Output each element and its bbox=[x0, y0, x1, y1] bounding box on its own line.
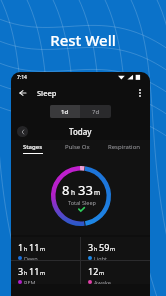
staticText: 3 bbox=[18, 265, 24, 277]
staticText: 7d bbox=[92, 108, 100, 116]
staticText: 7:14 bbox=[17, 74, 27, 81]
button[interactable]: 1 bbox=[11, 237, 80, 260]
button[interactable]: Respiration bbox=[99, 140, 150, 157]
staticText: m bbox=[40, 269, 46, 276]
staticText: m bbox=[40, 245, 46, 252]
staticText: h bbox=[24, 245, 28, 252]
staticText: 12 bbox=[88, 265, 99, 277]
staticText: m bbox=[99, 269, 105, 276]
staticText: REM bbox=[24, 279, 36, 284]
button[interactable]: 12 bbox=[81, 261, 150, 284]
staticText: Today bbox=[69, 126, 92, 137]
staticText: 59 bbox=[99, 241, 110, 253]
button[interactable]: More options bbox=[133, 86, 147, 100]
staticText: Respiration bbox=[108, 143, 141, 151]
staticText: 1 bbox=[18, 241, 24, 253]
button[interactable]: 1d bbox=[50, 105, 80, 118]
button[interactable]: 3 bbox=[81, 237, 150, 260]
staticText: Awake bbox=[94, 279, 111, 284]
staticText: Light bbox=[94, 255, 108, 260]
staticText: 11 bbox=[29, 265, 40, 277]
staticText: Stages bbox=[23, 143, 43, 151]
staticText: Rest Well bbox=[0, 30, 166, 50]
staticText: Deep bbox=[24, 255, 38, 260]
staticText: 3 bbox=[88, 241, 94, 253]
button[interactable]: Stages bbox=[11, 140, 55, 157]
staticText: 1d bbox=[61, 108, 69, 116]
staticText: Pulse Ox bbox=[65, 143, 90, 151]
staticText: 33 bbox=[78, 181, 93, 199]
button[interactable]: Previous day bbox=[17, 126, 28, 137]
button[interactable]: 7d bbox=[80, 105, 111, 118]
staticText: m bbox=[94, 188, 101, 197]
button[interactable]: 3 bbox=[11, 261, 80, 284]
staticText: Total Sleep bbox=[68, 199, 96, 206]
staticText: m bbox=[110, 245, 116, 252]
staticText: 8 bbox=[62, 181, 70, 199]
staticText: h bbox=[71, 188, 76, 197]
staticText: 11 bbox=[29, 241, 40, 253]
staticText: Sleep bbox=[37, 88, 57, 98]
staticText: h bbox=[94, 245, 98, 252]
button[interactable]: Back bbox=[14, 85, 30, 101]
button[interactable]: Pulse Ox bbox=[55, 140, 99, 157]
staticText: h bbox=[24, 269, 28, 276]
